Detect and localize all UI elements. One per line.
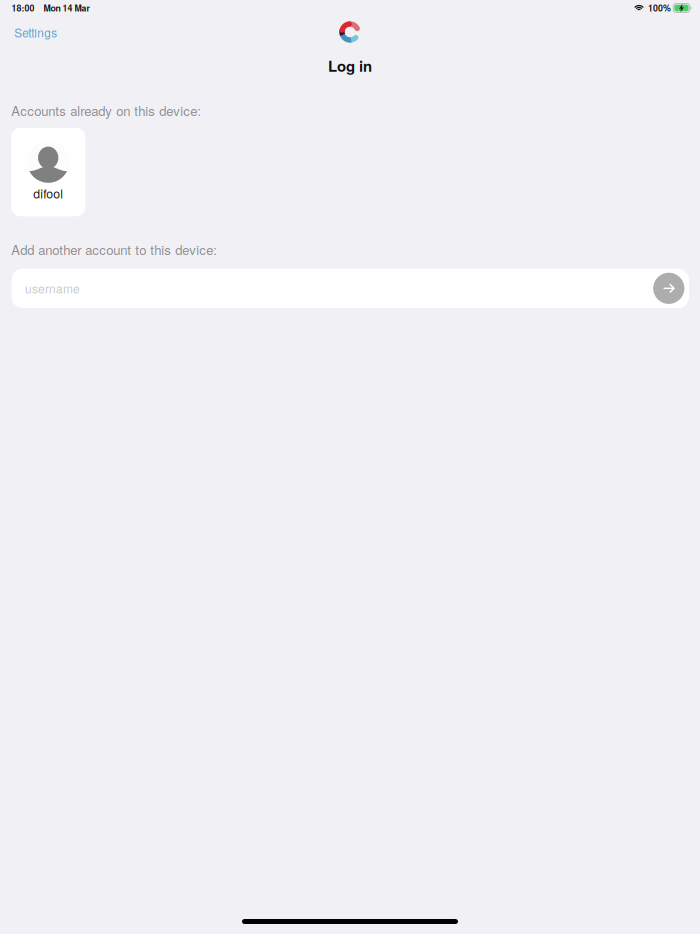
staticText: Accounts already on this device: [11,101,201,120]
staticText: Mon 14 Mar [43,2,89,14]
staticText: 100% [648,2,671,14]
button[interactable]: Settings [0,14,68,47]
staticText: 18:00 [11,2,34,14]
staticText: Log in [328,55,372,76]
staticText: Settings [14,24,57,41]
staticText: username [25,280,80,297]
button[interactable]: Continue [653,273,684,304]
button[interactable]: difool [11,128,85,216]
staticText: difool [33,184,63,202]
staticText: Add another account to this device: [11,240,217,259]
